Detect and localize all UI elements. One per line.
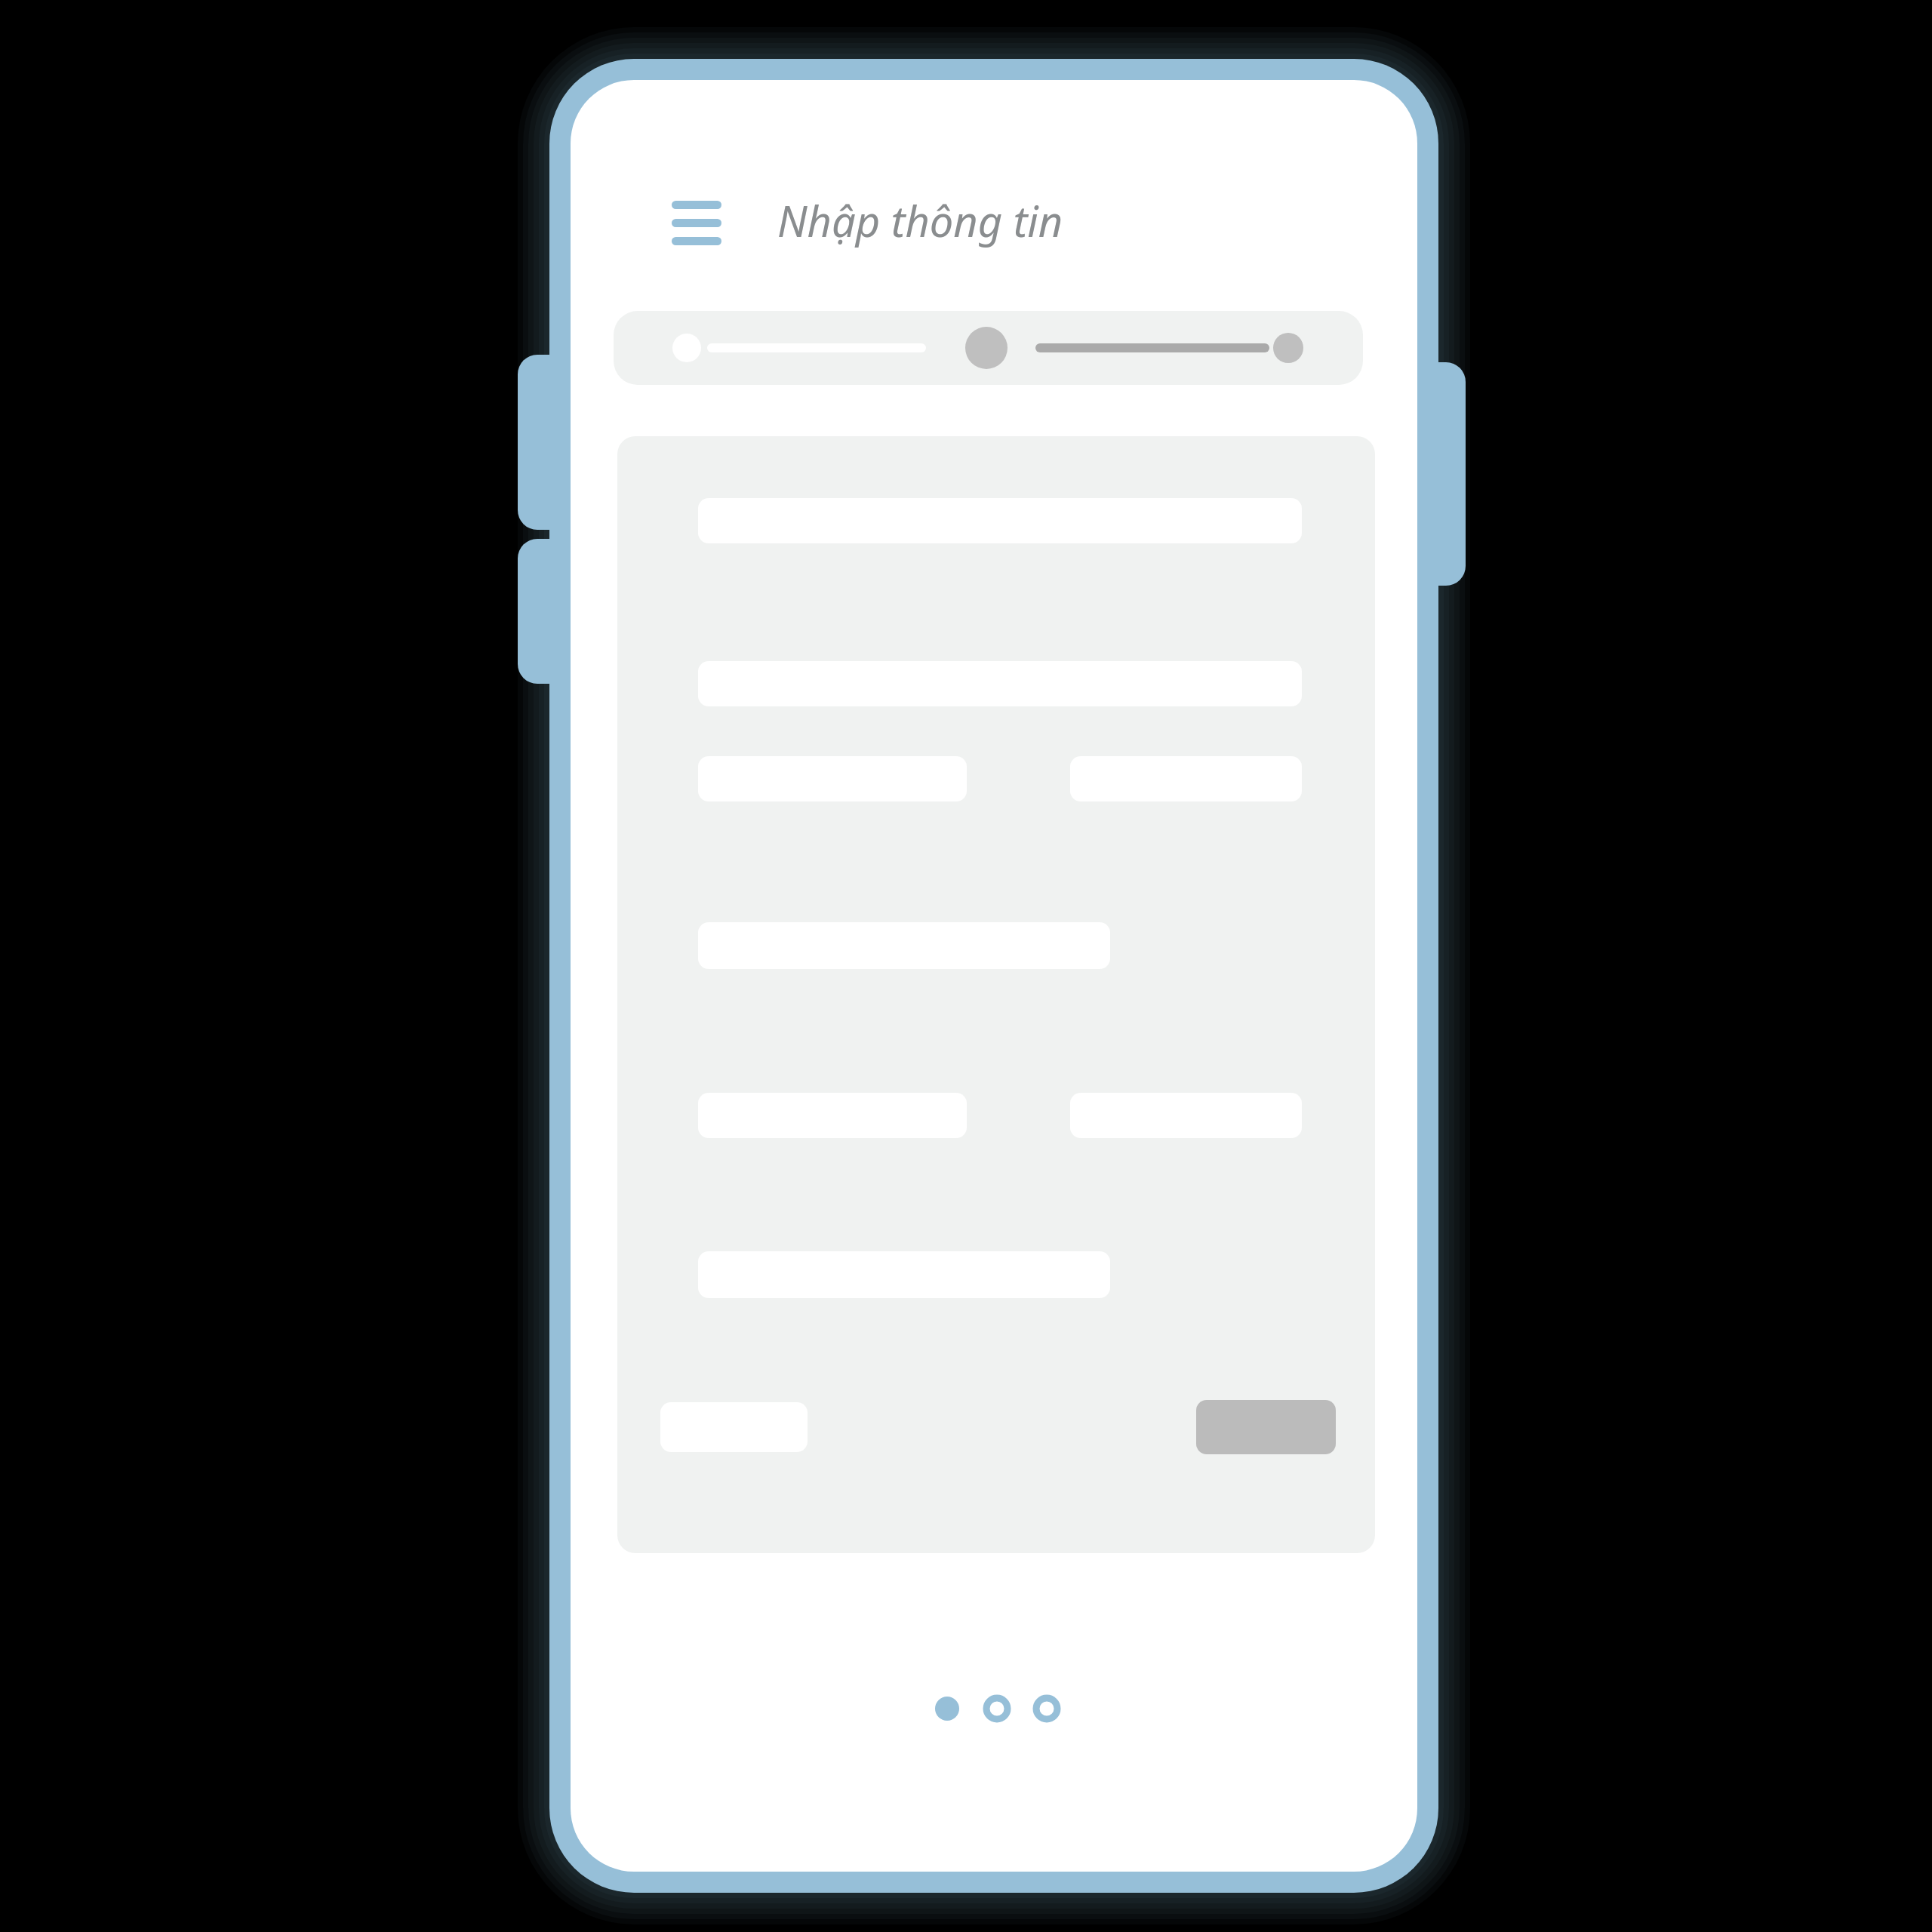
button[interactable]: Continue [1196, 1400, 1336, 1454]
button[interactable]: Page 2 [977, 1689, 1017, 1728]
button[interactable]: Step 1 [654, 314, 723, 383]
button[interactable]: Page 1 [928, 1689, 967, 1728]
button[interactable]: Page 3 [1027, 1689, 1066, 1728]
button[interactable]: Volume down [518, 539, 608, 684]
button[interactable]: Power [1380, 362, 1466, 586]
button[interactable]: Open navigation menu [651, 175, 743, 264]
button[interactable]: Volume up [518, 355, 608, 530]
staticText: Nhập thông tin [777, 192, 1063, 249]
button[interactable]: Step 2, current [950, 308, 1029, 386]
button[interactable]: Step 3 [1255, 314, 1324, 383]
